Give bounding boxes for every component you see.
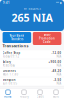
button[interactable]: Groceries [0, 68, 64, 77]
staticText: -48.20 [51, 69, 61, 73]
staticText: Sun 08:05 [3, 82, 18, 85]
button[interactable]: Cards [32, 88, 48, 100]
staticText: -12.00 [51, 51, 61, 55]
button[interactable]: Transport [0, 77, 64, 86]
staticText: Yesterday [3, 64, 15, 67]
button[interactable]: Coffee Shop [0, 50, 64, 59]
button[interactable]: Enter [33, 32, 61, 45]
staticText: ••• ▮ [56, 1, 61, 4]
staticText: NIA [56, 64, 61, 67]
staticText: Your Bank [9, 34, 24, 37]
staticText: Transactions [3, 43, 29, 48]
staticText: Transport [3, 78, 16, 82]
staticText: Coffee Shop [3, 51, 21, 55]
staticText: -3.50 [53, 78, 61, 82]
button[interactable]: Your Bank [3, 32, 31, 43]
staticText: Cards [36, 95, 43, 98]
staticText: 9:41 [3, 1, 10, 4]
staticText: MY BALANCE [23, 7, 40, 10]
staticText: Mon 17:40 [3, 73, 19, 76]
staticText: Groceries [3, 69, 16, 73]
staticText: NIA [56, 82, 61, 85]
staticText: +900.00 [48, 60, 61, 64]
staticText: Home [4, 95, 12, 98]
staticText: Enter [44, 33, 51, 37]
button[interactable]: Salary [0, 59, 64, 68]
staticText: History [19, 95, 28, 98]
staticText: More [52, 95, 59, 98]
button[interactable]: Home [0, 88, 16, 100]
button[interactable]: More [48, 88, 64, 100]
staticText: NIA [56, 55, 61, 58]
staticText: Transfers [11, 37, 23, 41]
staticText: Promotion [39, 37, 55, 40]
staticText: Salary [3, 60, 11, 64]
staticText: Today 09:12 [3, 55, 20, 58]
staticText: NIA [56, 73, 61, 76]
staticText: Code [43, 40, 51, 44]
staticText: 265 NIA [11, 10, 52, 25]
button[interactable]: History [16, 88, 32, 100]
